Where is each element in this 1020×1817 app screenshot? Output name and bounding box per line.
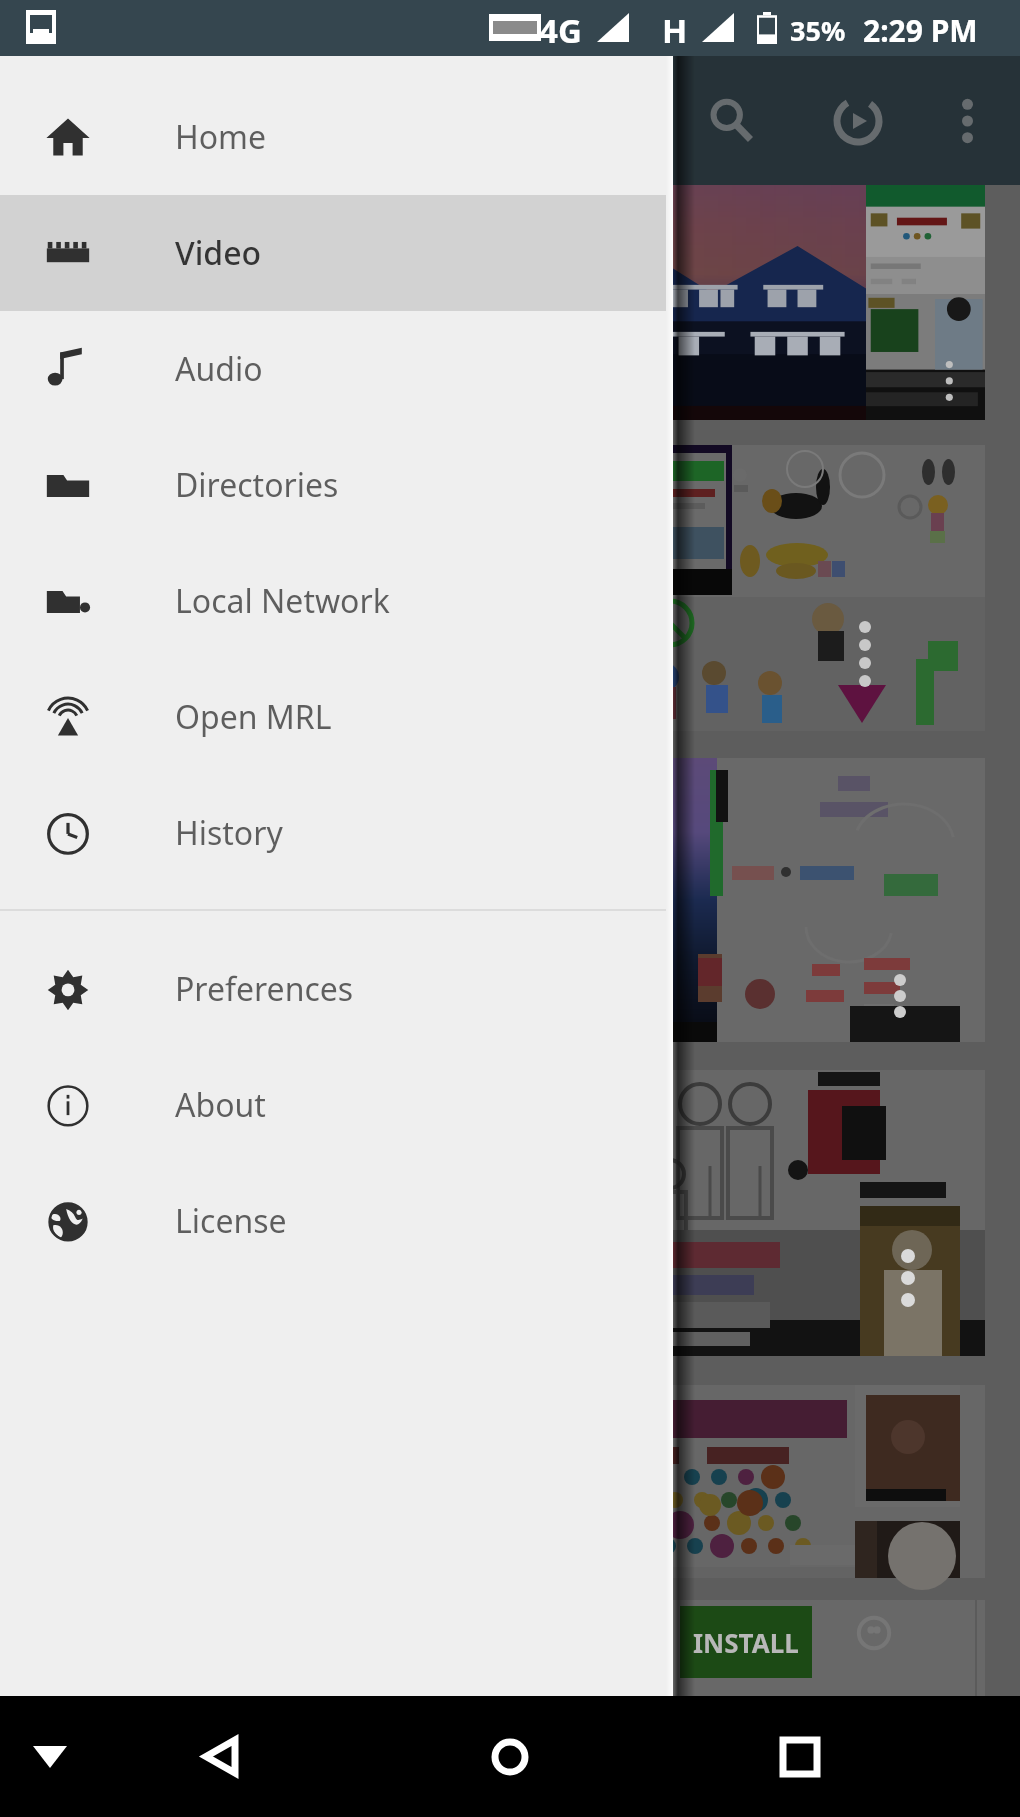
staticText: Preferences <box>175 967 354 1011</box>
button[interactable]: INSTALL <box>680 1606 812 1678</box>
button[interactable] <box>10 445 985 731</box>
button[interactable]: Directories <box>0 427 673 543</box>
staticText: Audio <box>175 347 263 391</box>
button[interactable]: Recent apps <box>750 1696 850 1817</box>
staticText: Video <box>175 231 262 275</box>
button[interactable]: Refresh <box>810 56 906 185</box>
button[interactable]: More options <box>925 56 1009 185</box>
staticText: Open MRL <box>175 695 332 739</box>
staticText: About <box>175 1083 266 1127</box>
button[interactable] <box>10 185 985 420</box>
button[interactable]: Search <box>684 56 780 185</box>
button[interactable]: License <box>0 1163 673 1279</box>
staticText: 2:29 PM <box>863 10 978 51</box>
button[interactable]: Video <box>0 195 673 311</box>
button[interactable]: Audio <box>0 311 673 427</box>
staticText: H <box>662 8 688 53</box>
button[interactable]: Home <box>0 79 673 195</box>
button[interactable]: About <box>0 1047 673 1163</box>
button[interactable]: Preferences <box>0 931 673 1047</box>
staticText: Directories <box>175 463 339 507</box>
button[interactable]: Hide keyboard <box>0 1696 100 1817</box>
button[interactable]: History <box>0 775 673 891</box>
button[interactable] <box>10 1385 985 1578</box>
staticText: 4G <box>539 8 582 53</box>
button[interactable]: Home <box>460 1696 560 1817</box>
button[interactable] <box>10 1070 985 1356</box>
staticText: License <box>175 1199 287 1243</box>
staticText: Home <box>175 115 267 159</box>
button[interactable]: Open MRL <box>0 659 673 775</box>
button[interactable] <box>10 758 985 1042</box>
button[interactable]: Local Network <box>0 543 673 659</box>
staticText: Local Network <box>175 579 390 623</box>
staticText: 35% <box>790 12 846 49</box>
staticText: History <box>175 811 283 855</box>
button[interactable]: Back <box>170 1696 270 1817</box>
staticText: INSTALL <box>693 1625 799 1660</box>
